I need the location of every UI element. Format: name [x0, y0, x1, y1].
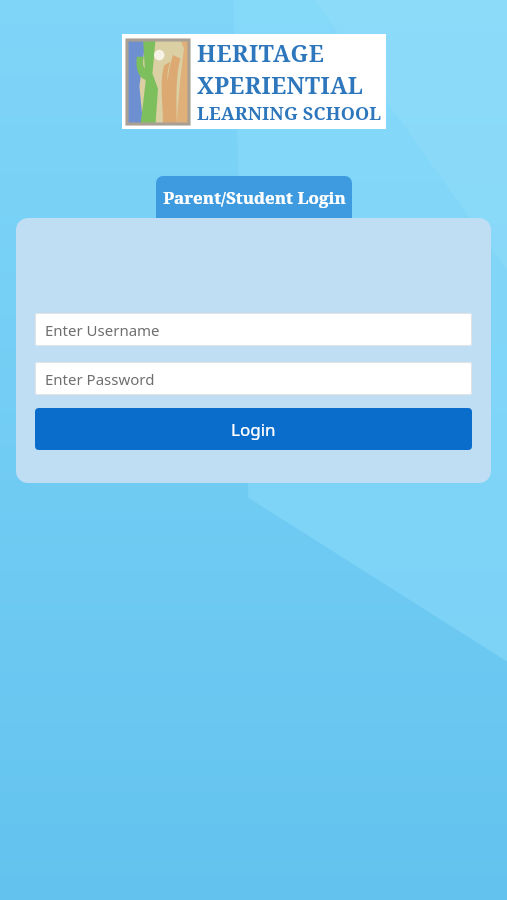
button[interactable]: Enter Username	[35, 313, 472, 346]
other: Heritage Xperiential Learning School log…	[127, 40, 189, 124]
button[interactable]: Login	[35, 408, 472, 450]
staticText: Parent/Student Login	[163, 186, 346, 209]
button[interactable]: Enter Password	[35, 362, 472, 395]
staticText: Enter Username	[45, 320, 160, 340]
staticText: XPERIENTIAL	[197, 69, 364, 100]
staticText: Login	[231, 418, 276, 441]
staticText: HERITAGE	[197, 37, 325, 68]
button[interactable]: Parent/Student Login	[156, 176, 352, 218]
staticText: LEARNING SCHOOL	[197, 101, 382, 126]
staticText: Enter Password	[45, 369, 155, 389]
